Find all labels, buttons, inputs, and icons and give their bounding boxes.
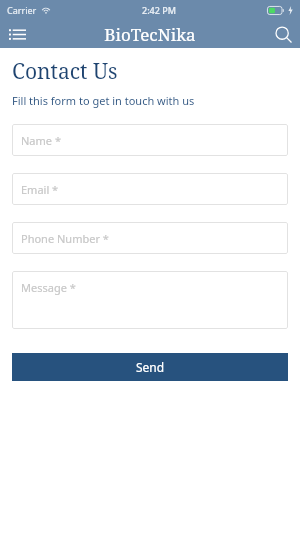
button[interactable]: Menu	[0, 20, 34, 48]
button[interactable]: Search	[266, 20, 300, 48]
staticText: Message *	[21, 280, 76, 295]
button[interactable]: Message *	[12, 271, 288, 329]
staticText: 2:42 PM	[142, 4, 176, 16]
button[interactable]: Name *	[12, 124, 288, 156]
staticText: Fill this form to get in touch with us	[12, 93, 195, 108]
staticText: Phone Number *	[21, 231, 109, 245]
staticText: Email *	[21, 182, 59, 196]
staticText: BioTecNika	[104, 23, 196, 46]
staticText: Carrier	[7, 4, 37, 16]
button[interactable]: Email *	[12, 173, 288, 205]
staticText: Name *	[21, 133, 61, 147]
button[interactable]: Phone Number *	[12, 222, 288, 254]
button[interactable]: Send	[12, 353, 288, 381]
staticText: Send	[136, 359, 165, 375]
staticText: Contact Us	[12, 57, 118, 86]
